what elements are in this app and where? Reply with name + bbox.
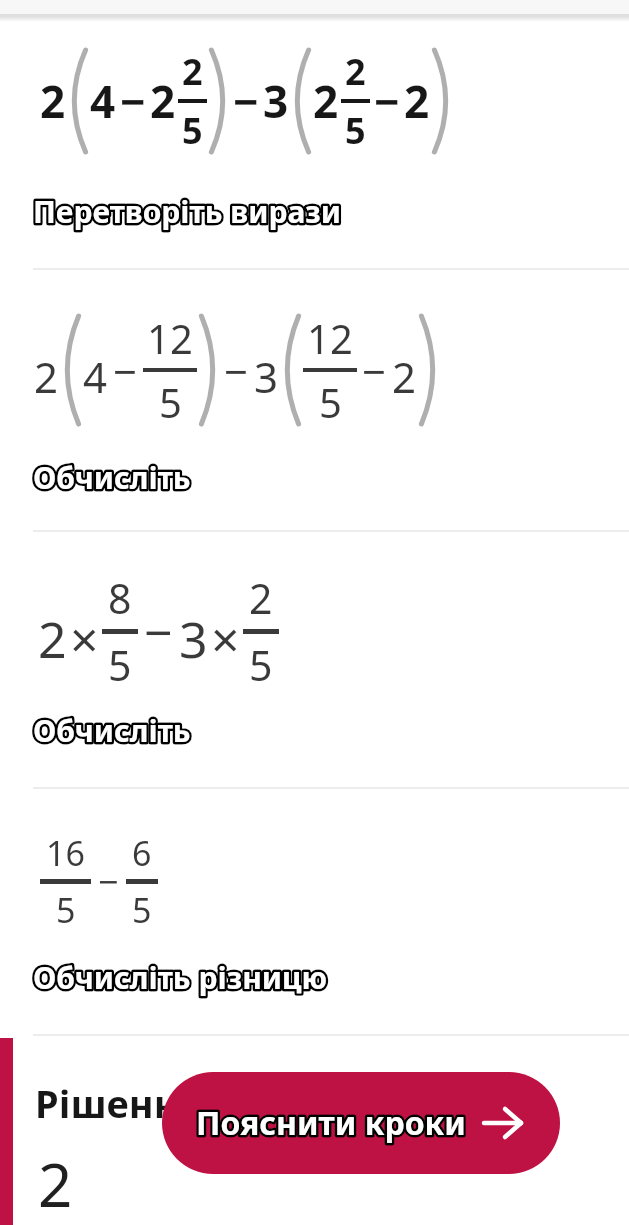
staticText: − [144, 598, 173, 666]
staticText: − [98, 857, 119, 906]
staticText: 3 [254, 348, 279, 405]
staticText: 5 [56, 887, 76, 933]
staticText: 5 [159, 375, 182, 429]
staticText: 5 [319, 375, 342, 429]
staticText: 2 [249, 570, 273, 626]
staticText: Пояснити кроки [196, 1101, 466, 1145]
staticText: Рішення [35, 1077, 202, 1129]
staticText: 5 [132, 887, 152, 933]
staticText: − [120, 71, 146, 131]
staticText: 2 [34, 348, 59, 405]
staticText: × [211, 605, 240, 673]
staticText: − [374, 71, 400, 131]
staticText: 3 [179, 605, 208, 673]
staticText: − [113, 342, 138, 399]
staticText: Пояснити кроки [196, 1101, 466, 1145]
staticText: 3 [263, 71, 289, 131]
staticText: 5 [108, 637, 132, 693]
staticText: 2 [392, 348, 417, 405]
staticText: − [362, 342, 387, 399]
staticText: 16 [46, 830, 85, 876]
staticText: Обчисліть [33, 710, 191, 751]
staticText: 8 [108, 570, 132, 626]
staticText: 5 [249, 637, 273, 693]
staticText: Перетворіть вирази [33, 191, 341, 232]
staticText: 2 [404, 71, 430, 131]
staticText: − [224, 342, 249, 399]
staticText: × [70, 605, 99, 673]
staticText: − [233, 71, 259, 131]
staticText: 12 [307, 311, 353, 365]
staticText: 5 [182, 106, 203, 155]
staticText: 5 [345, 106, 366, 155]
staticText: 2 [345, 47, 366, 96]
button[interactable]: Пояснити кроки [162, 1072, 560, 1174]
staticText: 4 [90, 71, 116, 131]
staticText: 12 [147, 311, 193, 365]
staticText: Обчисліть [33, 710, 191, 751]
staticText: Обчисліть різницю [33, 957, 328, 998]
staticText: Обчисліть різницю [33, 957, 328, 998]
staticText: 6 [132, 830, 152, 876]
staticText: 4 [83, 348, 108, 405]
staticText: 2 [313, 71, 339, 131]
staticText: 2 [40, 71, 66, 131]
staticText: Перетворіть вирази [33, 191, 341, 232]
staticText: 2 [150, 71, 176, 131]
staticText: 2 [182, 47, 203, 96]
staticText: 2 [38, 605, 67, 673]
staticText: Обчисліть [33, 457, 191, 498]
staticText: 2 [38, 1143, 73, 1225]
staticText: Обчисліть [33, 457, 191, 498]
